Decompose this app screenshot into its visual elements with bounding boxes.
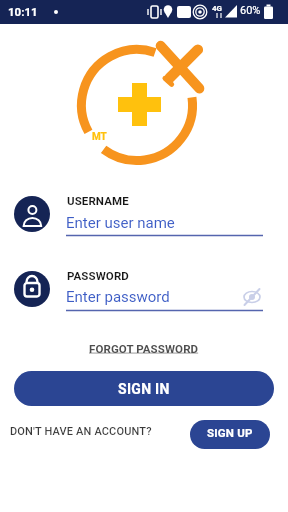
staticText: DON'T HAVE AN ACCOUNT? <box>10 425 152 438</box>
staticText: SIGN IN <box>118 381 170 397</box>
button[interactable] <box>240 286 264 310</box>
staticText: 10:11 <box>8 5 38 18</box>
staticText: SIGN UP <box>207 426 253 439</box>
button[interactable]: Enter user name <box>64 211 264 237</box>
button[interactable]: FORGOT PASSWORD <box>0 340 288 356</box>
button[interactable]: SIGN UP <box>190 420 270 449</box>
staticText: FORGOT PASSWORD <box>89 342 199 355</box>
staticText: Enter password <box>66 288 170 306</box>
button[interactable]: Enter password <box>64 285 234 312</box>
button[interactable]: SIGN IN <box>14 371 274 406</box>
staticText: 4G <box>212 4 223 13</box>
staticText: 60% <box>240 4 261 17</box>
staticText: Enter user name <box>66 214 175 232</box>
staticText: USERNAME <box>67 194 129 207</box>
staticText: MT <box>92 131 107 143</box>
staticText: PASSWORD <box>67 269 129 282</box>
